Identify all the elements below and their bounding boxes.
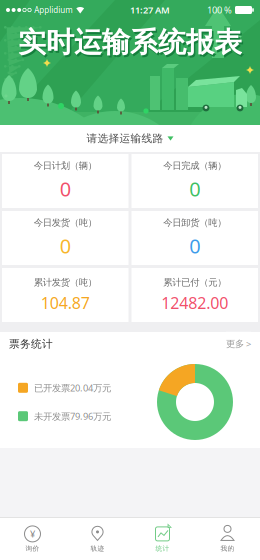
staticText: 11:27 AM bbox=[130, 4, 170, 16]
button[interactable]: 我的 bbox=[195, 518, 260, 560]
staticText: 实时运输系统报表 bbox=[18, 25, 242, 60]
staticText: 询价 bbox=[25, 544, 39, 553]
staticText: 今日发货（吨） bbox=[34, 217, 97, 228]
staticText: 今日计划（辆） bbox=[34, 160, 97, 171]
staticText: 0 bbox=[189, 175, 200, 202]
staticText: > bbox=[246, 338, 251, 350]
staticText: 统计 bbox=[155, 544, 169, 553]
staticText: 票务统计 bbox=[9, 337, 53, 350]
staticText: Applidium bbox=[34, 5, 72, 15]
staticText: 实时运输系统报表 bbox=[19, 27, 243, 62]
staticText: 累计发货（吨） bbox=[34, 277, 97, 288]
staticText: 累计已付（元） bbox=[163, 277, 226, 288]
staticText: 0 bbox=[189, 232, 200, 259]
button[interactable]: 更多 bbox=[226, 332, 251, 356]
staticText: 未开发票79.96万元 bbox=[34, 410, 111, 422]
staticText: 我的 bbox=[220, 544, 234, 553]
staticText: 更多 bbox=[226, 338, 244, 350]
staticText: 12482.00 bbox=[161, 292, 228, 313]
staticText: 已开发票20.04万元 bbox=[34, 382, 111, 394]
staticText: 今日完成（辆） bbox=[163, 160, 226, 171]
staticText: 0 bbox=[60, 232, 71, 259]
staticText: 104.87 bbox=[41, 292, 90, 313]
staticText: 今日卸货（吨） bbox=[163, 217, 226, 228]
staticText: 100 % bbox=[207, 4, 232, 16]
button[interactable]: 统计 bbox=[130, 518, 195, 560]
staticText: 请选择运输线路 bbox=[86, 132, 163, 145]
staticText: 0 bbox=[60, 175, 71, 202]
button[interactable]: 轨迹 bbox=[65, 518, 130, 560]
staticText: ¥ bbox=[30, 528, 35, 540]
button[interactable]: ¥ bbox=[0, 518, 65, 560]
button[interactable]: 请选择运输线路 bbox=[0, 125, 260, 152]
staticText: 轨迹 bbox=[90, 544, 104, 553]
